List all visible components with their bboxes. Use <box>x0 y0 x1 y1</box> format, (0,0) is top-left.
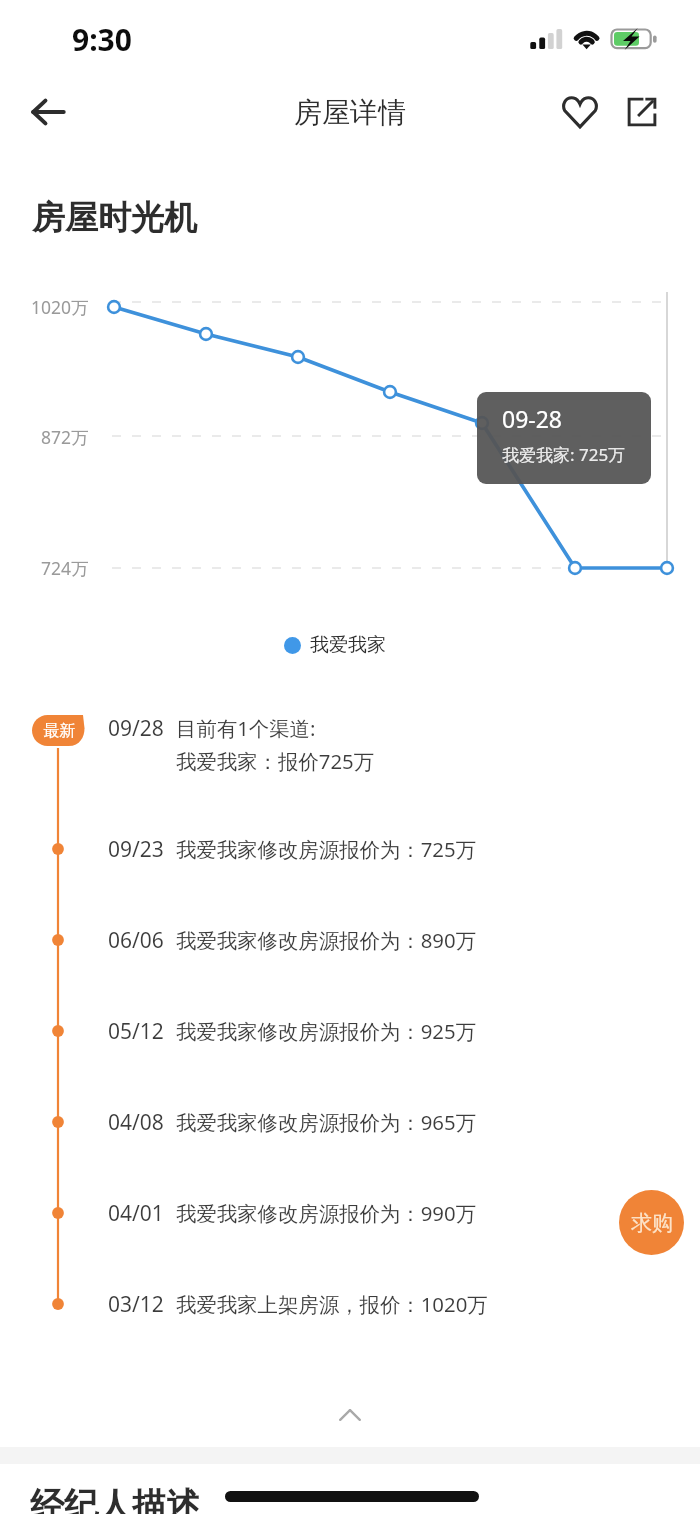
button[interactable]: 03/12 <box>0 1288 700 1320</box>
staticText: 房屋详情 <box>294 95 406 130</box>
staticText: 我爱我家 <box>310 633 386 657</box>
button[interactable]: Share <box>612 82 672 142</box>
staticText: 06/06 <box>108 926 164 955</box>
button[interactable]: 最新 <box>32 715 86 746</box>
staticText: 我爱我家修改房源报价为：725万 <box>176 835 477 863</box>
staticText: 经纪人描述 <box>30 1484 200 1514</box>
button[interactable]: Back <box>18 82 78 142</box>
staticText: 我爱我家修改房源报价为：890万 <box>176 926 477 954</box>
staticText: 1020万 <box>31 295 89 319</box>
button[interactable]: 06/06 <box>0 924 700 956</box>
button[interactable]: 09/23 <box>0 833 700 865</box>
button[interactable]: 求购 <box>619 1190 684 1255</box>
staticText: 724万 <box>41 556 89 580</box>
staticText: 09-28 <box>502 403 563 434</box>
staticText: 9:30 <box>72 19 132 60</box>
button[interactable]: Favorite <box>550 82 610 142</box>
staticText: 目前有1个渠道: <box>176 714 316 742</box>
button[interactable]: 05/12 <box>0 1015 700 1047</box>
button[interactable]: 04/01 <box>0 1197 700 1229</box>
button[interactable]: 09/28 <box>0 712 700 744</box>
staticText: 最新 <box>43 721 75 741</box>
staticText: 房屋时光机 <box>32 197 197 239</box>
staticText: 04/01 <box>108 1199 164 1228</box>
button[interactable]: Collapse <box>0 1391 700 1439</box>
staticText: 04/08 <box>108 1108 164 1137</box>
staticText: 872万 <box>41 425 89 449</box>
staticText: 03/12 <box>108 1290 164 1319</box>
button[interactable]: 04/08 <box>0 1106 700 1138</box>
staticText: 我爱我家: 725万 <box>502 443 626 466</box>
staticText: 我爱我家上架房源，报价：1020万 <box>176 1290 488 1318</box>
staticText: 我爱我家修改房源报价为：990万 <box>176 1199 477 1227</box>
staticText: 我爱我家：报价725万 <box>176 747 375 775</box>
staticText: 09/28 <box>108 714 164 743</box>
staticText: 我爱我家修改房源报价为：965万 <box>176 1108 477 1136</box>
staticText: 我爱我家修改房源报价为：925万 <box>176 1017 477 1045</box>
staticText: 09/23 <box>108 835 164 864</box>
staticText: 05/12 <box>108 1017 164 1046</box>
staticText: 求购 <box>631 1210 673 1236</box>
